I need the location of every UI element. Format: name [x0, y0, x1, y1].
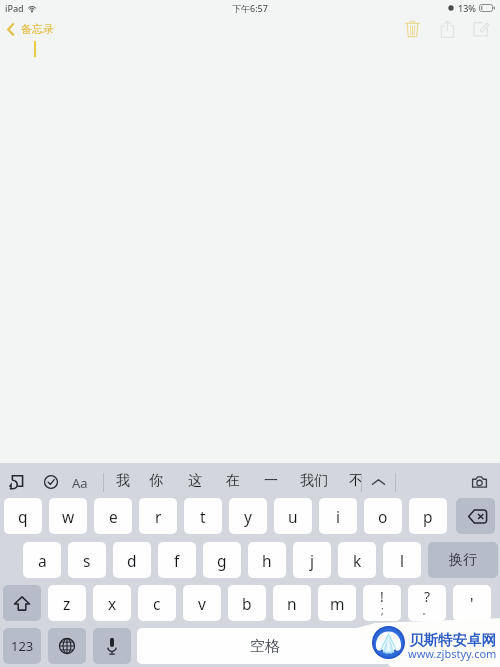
button[interactable]: o: [364, 498, 402, 534]
button[interactable]: r: [139, 498, 177, 534]
staticText: 换行: [449, 551, 477, 569]
staticText: w: [62, 506, 75, 527]
staticText: u: [288, 506, 298, 527]
button[interactable]: h: [248, 542, 286, 578]
button[interactable]: e: [94, 498, 132, 534]
button[interactable]: ': [453, 585, 491, 621]
staticText: x: [108, 593, 117, 614]
button[interactable]: z: [48, 585, 86, 621]
staticText: 我们: [300, 472, 328, 490]
staticText: 13%: [458, 2, 476, 14]
button[interactable]: Switch keyboard: [48, 628, 86, 664]
button[interactable]: 我: [110, 469, 136, 492]
staticText: Aa: [72, 474, 88, 490]
button[interactable]: u: [274, 498, 312, 534]
button[interactable]: 你: [143, 469, 169, 492]
button[interactable]: Share: [434, 16, 460, 42]
staticText: n: [287, 593, 297, 614]
staticText: a: [38, 550, 47, 571]
staticText: iPad: [5, 2, 24, 14]
button[interactable]: b: [228, 585, 266, 621]
staticText: d: [127, 550, 137, 571]
button[interactable]: !: [363, 585, 401, 621]
button[interactable]: Delete note: [399, 16, 425, 42]
button[interactable]: t: [184, 498, 222, 534]
staticText: e: [109, 506, 118, 527]
staticText: 在: [226, 472, 240, 490]
button[interactable]: m: [318, 585, 356, 621]
button[interactable]: k: [338, 542, 376, 578]
button[interactable]: a: [23, 542, 61, 578]
button[interactable]: v: [183, 585, 221, 621]
staticText: m: [330, 593, 345, 614]
staticText: c: [153, 593, 161, 614]
staticText: 下午6:57: [232, 2, 268, 14]
button[interactable]: Backspace: [456, 498, 495, 534]
button[interactable]: 这: [182, 469, 208, 492]
button[interactable]: 123: [3, 628, 41, 664]
staticText: 你: [149, 472, 163, 490]
button[interactable]: Shift: [3, 585, 41, 621]
staticText: t: [200, 506, 206, 527]
button[interactable]: j: [293, 542, 331, 578]
button[interactable]: ?: [408, 585, 446, 621]
staticText: !: [380, 587, 384, 606]
button[interactable]: f: [158, 542, 196, 578]
button[interactable]: New note: [468, 16, 494, 42]
button[interactable]: 备忘录: [0, 22, 60, 36]
staticText: 备忘录: [21, 22, 54, 36]
button[interactable]: y: [229, 498, 267, 534]
button[interactable]: g: [203, 542, 241, 578]
button[interactable]: 空格: [137, 628, 393, 664]
button[interactable]: p: [409, 498, 447, 534]
button[interactable]: 一: [258, 469, 284, 492]
staticText: 我: [116, 472, 130, 490]
staticText: q: [18, 506, 28, 527]
staticText: i: [336, 506, 340, 527]
button[interactable]: x: [93, 585, 131, 621]
button[interactable]: Text size: [70, 474, 89, 490]
staticText: 这: [188, 472, 202, 490]
staticText: p: [423, 506, 433, 527]
staticText: o: [378, 506, 388, 527]
staticText: k: [353, 550, 362, 571]
button[interactable]: Dictation: [93, 628, 131, 664]
button[interactable]: l: [383, 542, 421, 578]
staticText: 不: [349, 472, 361, 490]
button[interactable]: i: [319, 498, 357, 534]
button[interactable]: d: [113, 542, 151, 578]
staticText: b: [242, 593, 252, 614]
staticText: www.zjbstyy.com: [408, 646, 497, 661]
button[interactable]: Expand candidates: [370, 474, 386, 490]
button[interactable]: Undo: [8, 475, 24, 489]
staticText: ': [470, 593, 474, 614]
staticText: 123: [11, 637, 34, 655]
staticText: ;: [381, 603, 384, 617]
staticText: h: [262, 550, 272, 571]
button[interactable]: n: [273, 585, 311, 621]
staticText: l: [400, 550, 404, 571]
staticText: j: [310, 550, 314, 571]
staticText: y: [244, 506, 252, 527]
staticText: z: [63, 593, 71, 614]
button[interactable]: c: [138, 585, 176, 621]
staticText: g: [217, 550, 227, 571]
staticText: 空格: [250, 637, 280, 656]
staticText: 贝斯特安卓网: [409, 631, 496, 649]
staticText: s: [83, 550, 91, 571]
button[interactable]: s: [68, 542, 106, 578]
staticText: 一: [264, 472, 278, 490]
button[interactable]: w: [49, 498, 87, 534]
button[interactable]: 在: [220, 469, 246, 492]
button[interactable]: 换行: [428, 542, 498, 578]
button[interactable]: Confirm: [43, 475, 59, 489]
button[interactable]: Camera input: [470, 475, 488, 489]
staticText: ?: [424, 587, 431, 606]
staticText: r: [155, 506, 162, 527]
button[interactable]: q: [4, 498, 42, 534]
button[interactable]: 不: [349, 469, 361, 492]
staticText: f: [174, 550, 180, 571]
button[interactable]: 我们: [294, 469, 334, 492]
staticText: v: [198, 593, 206, 614]
staticText: 。: [422, 604, 432, 617]
